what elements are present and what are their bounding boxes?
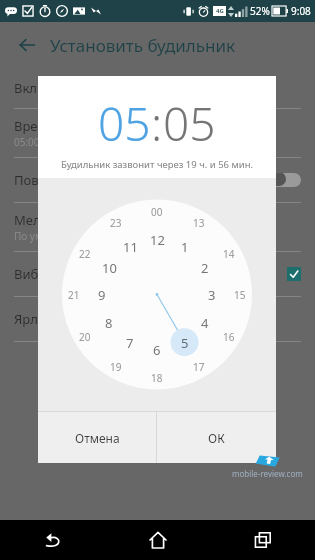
staticText: Время <box>14 117 56 135</box>
staticText: 8 <box>105 314 113 332</box>
staticText: 16 <box>223 330 235 344</box>
staticText: Ярлык <box>14 310 55 328</box>
staticText: 05:00 <box>14 135 40 149</box>
button[interactable]: 2 <box>192 255 218 281</box>
button[interactable]: 1 <box>172 234 198 260</box>
button[interactable]: Повтор <box>0 158 315 202</box>
staticText: 3 <box>208 286 216 304</box>
staticText: Мелодия <box>14 211 72 229</box>
staticText: 21 <box>68 288 80 302</box>
button[interactable]: 00 <box>145 200 169 224</box>
button[interactable]: Обзор приложений <box>210 520 315 560</box>
button[interactable]: 5 <box>172 330 198 356</box>
staticText: 18 <box>151 371 163 385</box>
button[interactable]: Ярлык <box>0 297 315 341</box>
staticText: 00 <box>151 205 163 219</box>
staticText: Установить будильник <box>50 34 236 57</box>
staticText: Отмена <box>75 430 120 446</box>
button[interactable]: 17 <box>187 355 211 379</box>
staticText: Включить <box>14 79 77 97</box>
button[interactable]: Отмена <box>38 412 156 463</box>
staticText: Вибрация <box>14 265 77 283</box>
staticText: mobile-review.com <box>232 468 303 479</box>
staticText: По умолчанию <box>14 229 87 243</box>
button[interactable]: 11 <box>117 234 143 260</box>
button[interactable]: 6 <box>144 337 170 363</box>
staticText: 5 <box>181 334 189 352</box>
button[interactable]: 18 <box>145 366 169 390</box>
staticText: 23 <box>110 216 122 230</box>
button[interactable]: Время <box>0 109 315 157</box>
button[interactable]: 05 <box>98 92 151 155</box>
staticText: 52% <box>250 4 270 18</box>
staticText: 7 <box>126 334 134 352</box>
button[interactable]: 16 <box>217 325 241 349</box>
staticText: 17 <box>193 360 205 374</box>
button[interactable]: Назад <box>12 30 42 60</box>
button[interactable]: 13 <box>187 211 211 235</box>
button[interactable]: Включить <box>0 68 315 108</box>
button[interactable]: 3 <box>199 282 225 308</box>
button[interactable]: Назад <box>0 520 105 560</box>
button[interactable]: 9 <box>89 282 115 308</box>
button[interactable]: 20 <box>73 325 97 349</box>
staticText: : <box>151 92 163 155</box>
button[interactable]: 15 <box>228 283 252 307</box>
staticText: 9 <box>98 286 106 304</box>
staticText: 22 <box>79 247 91 261</box>
button[interactable]: ОК <box>157 412 276 463</box>
button[interactable]: 4 <box>192 310 218 336</box>
button[interactable]: 05 <box>163 92 216 155</box>
staticText: 4 <box>201 314 209 332</box>
staticText: 11 <box>123 238 138 256</box>
staticText: 10 <box>102 259 117 277</box>
button[interactable]: 10 <box>96 255 122 281</box>
staticText: 19 <box>110 360 122 374</box>
staticText: 15 <box>234 288 246 302</box>
staticText: 20 <box>79 330 91 344</box>
staticText: Будильник зазвонит через 19 ч. и 56 мин. <box>38 158 276 171</box>
button[interactable]: 14 <box>217 242 241 266</box>
staticText: 4G <box>216 7 224 15</box>
button[interactable]: 7 <box>117 330 143 356</box>
staticText: ОК <box>208 430 225 446</box>
button[interactable]: 8 <box>96 310 122 336</box>
button[interactable]: 21 <box>62 283 86 307</box>
staticText: Повтор <box>14 171 60 189</box>
staticText: 13 <box>193 216 205 230</box>
button[interactable]: 22 <box>73 242 97 266</box>
staticText: 9:08 <box>291 4 311 18</box>
staticText: 14 <box>223 247 235 261</box>
button[interactable]: 19 <box>104 355 128 379</box>
staticText: 1 <box>181 238 189 256</box>
button[interactable]: Мелодия <box>0 203 315 251</box>
staticText: 2 <box>201 259 209 277</box>
button[interactable]: Главный экран <box>105 520 210 560</box>
button[interactable]: 12 <box>144 227 170 253</box>
staticText: 6 <box>153 341 161 359</box>
button[interactable]: 23 <box>104 211 128 235</box>
staticText: 12 <box>150 231 165 249</box>
button[interactable]: Вибрация <box>0 252 315 296</box>
